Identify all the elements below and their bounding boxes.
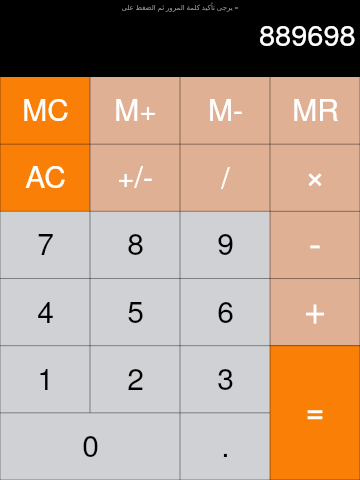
staticText: 9 bbox=[217, 221, 234, 264]
button[interactable]: 8 bbox=[90, 211, 180, 278]
staticText: 4 bbox=[37, 289, 54, 332]
button[interactable]: 9 bbox=[180, 211, 270, 278]
button[interactable]: equals bbox=[270, 346, 360, 480]
staticText: يرجى تأكيد كلمة المرور ثم الضغط على = bbox=[0, 3, 360, 13]
staticText: 2 bbox=[127, 356, 144, 399]
button[interactable]: plus minus bbox=[90, 144, 180, 211]
staticText: 889698 bbox=[259, 13, 356, 55]
button[interactable]: MC bbox=[0, 77, 90, 144]
button[interactable]: 0 bbox=[0, 413, 180, 480]
staticText: / bbox=[221, 155, 230, 198]
staticText: 7 bbox=[37, 221, 54, 264]
button[interactable]: MR bbox=[270, 77, 360, 144]
button[interactable]: 2 bbox=[90, 346, 180, 413]
staticText: 0 bbox=[82, 423, 99, 466]
button[interactable]: 6 bbox=[180, 279, 270, 346]
button[interactable]: plus bbox=[270, 279, 360, 346]
staticText: 5 bbox=[127, 289, 144, 332]
staticText: 8 bbox=[127, 221, 144, 264]
staticText: 1 bbox=[37, 356, 54, 399]
button[interactable]: 4 bbox=[0, 279, 90, 346]
staticText: +/- bbox=[117, 154, 153, 197]
staticText: MR bbox=[292, 87, 339, 130]
staticText: 6 bbox=[217, 289, 234, 332]
button[interactable]: divide bbox=[180, 144, 270, 211]
button[interactable]: 1 bbox=[0, 346, 90, 413]
button[interactable]: AC bbox=[0, 144, 90, 211]
staticText: M- bbox=[208, 87, 243, 130]
staticText: . bbox=[221, 423, 230, 466]
button[interactable]: M+ bbox=[90, 77, 180, 144]
button[interactable]: decimal point bbox=[180, 413, 270, 480]
button[interactable]: 3 bbox=[180, 346, 270, 413]
button[interactable]: multiply bbox=[270, 144, 360, 211]
button[interactable]: minus bbox=[270, 211, 360, 278]
staticText: M+ bbox=[114, 87, 157, 130]
button[interactable]: 7 bbox=[0, 211, 90, 278]
staticText: 3 bbox=[217, 356, 234, 399]
staticText: MC bbox=[22, 87, 69, 130]
button[interactable]: M- bbox=[180, 77, 270, 144]
button[interactable]: 5 bbox=[90, 279, 180, 346]
staticText: AC bbox=[25, 154, 66, 197]
